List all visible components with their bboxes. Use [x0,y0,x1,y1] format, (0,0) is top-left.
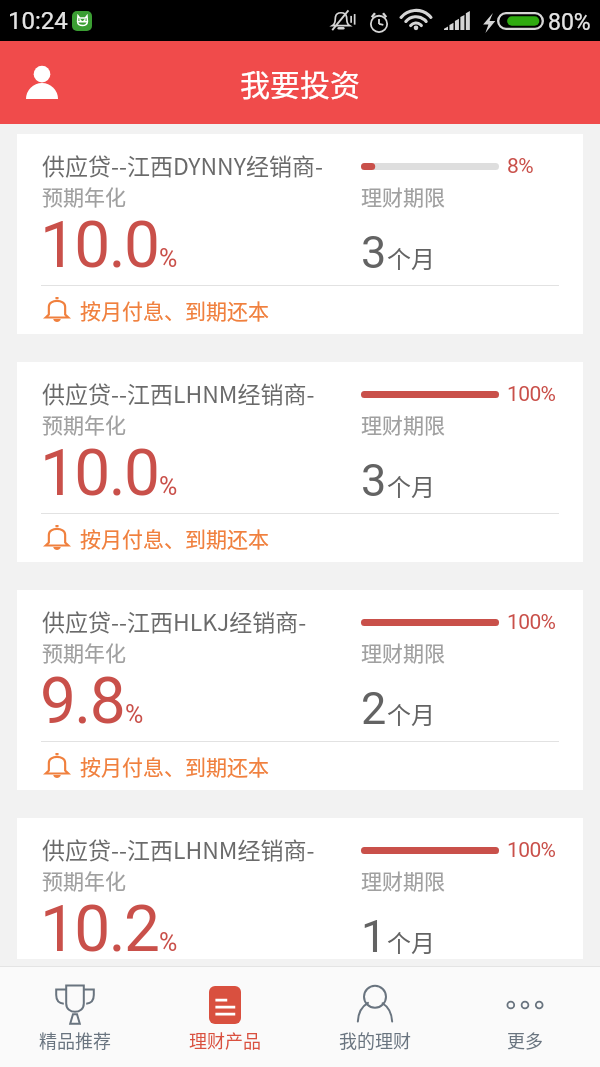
staticText: 个月 [387,240,435,275]
staticText: 按月付息、到期还本 [80,523,269,553]
staticText: 个月 [387,924,435,959]
staticText: 理财产品 [189,1027,261,1053]
staticText: 供应贷--江西DYNNY经销商- [42,148,323,181]
staticText: 100% [507,610,556,635]
staticText: 按月付息、到期还本 [80,751,269,781]
staticText: 预期年化 [42,865,126,895]
staticText: 9.8 [40,664,125,739]
button[interactable]: 供应贷--江西LHNM经销商- [17,818,583,959]
staticText: % [159,928,178,957]
staticText: 理财期限 [361,409,445,439]
staticText: 80% [548,9,591,36]
button[interactable]: 精品推荐 [0,966,150,1067]
staticText: 理财期限 [361,865,445,895]
staticText: % [125,700,144,729]
staticText: 供应贷--江西LHNM经销商- [42,376,315,409]
staticText: 100% [507,382,556,407]
button[interactable]: 理财产品 [150,966,300,1067]
staticText: 精品推荐 [39,1027,111,1053]
staticText: 10.0 [40,436,159,511]
staticText: 个月 [387,696,435,731]
staticText: 8% [507,154,533,179]
staticText: 10.0 [40,208,159,283]
staticText: % [159,244,178,273]
staticText: 按月付息、到期还本 [80,979,269,1009]
staticText: 我要投资 [240,61,360,104]
button[interactable]: 更多 [450,966,600,1067]
button[interactable]: 供应贷--江西DYNNY经销商- [17,134,583,334]
staticText: 供应贷--江西HLKJ经销商- [42,604,307,637]
staticText: 我的理财 [339,1027,411,1053]
staticText: 100% [507,838,556,863]
staticText: 10:24 [8,7,68,35]
staticText: 个月 [387,468,435,503]
staticText: 按月付息、到期还本 [80,295,269,325]
staticText: % [159,472,178,501]
staticText: 预期年化 [42,181,126,211]
staticText: 供应贷--江西LHNM经销商- [42,832,315,865]
button[interactable]: 供应贷--江西LHNM经销商- [17,362,583,562]
button[interactable]: Profile [15,57,69,109]
staticText: 3 [361,226,387,279]
staticText: 2 [361,682,387,735]
staticText: 预期年化 [42,409,126,439]
staticText: 3 [361,454,387,507]
staticText: 理财期限 [361,181,445,211]
staticText: 更多 [507,1027,543,1053]
staticText: 1 [361,910,387,963]
staticText: 10.2 [40,892,159,967]
staticText: 预期年化 [42,637,126,667]
button[interactable]: 我的理财 [300,966,450,1067]
staticText: 理财期限 [361,637,445,667]
button[interactable]: 供应贷--江西HLKJ经销商- [17,590,583,790]
